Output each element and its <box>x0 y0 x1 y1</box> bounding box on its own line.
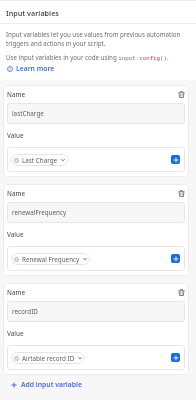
button[interactable]: Insert variable <box>171 155 180 164</box>
staticText: Learn more <box>16 64 55 73</box>
button[interactable]: Learn more <box>7 64 55 73</box>
button[interactable]: renewalFrequency <box>7 202 185 223</box>
staticText: recordID <box>12 307 38 316</box>
staticText: lastCharge <box>12 109 44 118</box>
button[interactable]: lastCharge <box>7 103 185 124</box>
button[interactable]: Last Charge <box>11 154 68 166</box>
staticText: Input variables <box>6 8 59 18</box>
staticText: Value <box>7 329 24 338</box>
staticText: Use input variables in your code using i… <box>6 53 169 61</box>
button[interactable]: Delete input variable <box>176 287 186 297</box>
staticText: Add input variable <box>21 380 82 389</box>
button[interactable]: Renewal Frequency <box>11 253 90 265</box>
button[interactable]: Airtable record ID <box>11 352 85 364</box>
button[interactable]: recordID <box>7 301 185 322</box>
staticText: Name <box>7 189 26 198</box>
button[interactable]: Delete input variable <box>176 188 186 198</box>
staticText: Renewal Frequency <box>22 255 80 264</box>
staticText: Input variables let you use values from … <box>6 30 191 48</box>
button[interactable]: Delete input variable <box>176 89 186 99</box>
staticText: Airtable record ID <box>22 354 75 363</box>
staticText: Name <box>7 288 26 297</box>
button[interactable]: Insert variable <box>171 353 180 362</box>
button[interactable]: Insert variable <box>171 254 180 263</box>
button[interactable]: Add input variable <box>11 380 82 389</box>
staticText: Value <box>7 230 24 239</box>
staticText: Name <box>7 90 26 99</box>
staticText: Value <box>7 131 24 140</box>
staticText: Last Charge <box>22 156 58 165</box>
staticText: renewalFrequency <box>12 208 67 217</box>
